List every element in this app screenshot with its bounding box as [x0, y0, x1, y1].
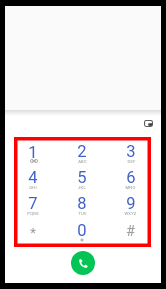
staticText: 3 [126, 142, 136, 161]
staticText: 7 [28, 194, 38, 213]
staticText: 2 [77, 142, 87, 161]
staticText: WXYZ [124, 211, 137, 216]
staticText: 1 [28, 143, 38, 162]
button[interactable]: 4 [9, 167, 57, 193]
button[interactable]: 8 [57, 193, 106, 219]
staticText: 8 [77, 194, 87, 213]
staticText: # [126, 223, 135, 240]
staticText: * [30, 225, 36, 240]
staticText: JKL [78, 185, 86, 190]
button[interactable]: 0 [57, 219, 106, 245]
button[interactable]: 2 [57, 141, 106, 167]
button[interactable]: Call [71, 251, 95, 275]
staticText: 5 [77, 168, 87, 187]
button[interactable]: 1 [9, 141, 57, 167]
staticText: DEF [127, 159, 136, 164]
staticText: 9 [126, 194, 136, 213]
button[interactable]: # [106, 219, 155, 245]
button[interactable]: 3 [106, 141, 155, 167]
button[interactable]: 6 [106, 167, 155, 193]
staticText: 0 [77, 221, 87, 240]
staticText: ABC [78, 159, 87, 164]
button[interactable]: 9 [106, 193, 155, 219]
staticText: PQRS [27, 211, 39, 216]
button[interactable]: * [9, 219, 57, 245]
button[interactable]: Picture in picture [136, 111, 160, 135]
button[interactable]: 7 [9, 193, 57, 219]
staticText: 6 [126, 168, 136, 187]
staticText: MNO [125, 185, 136, 190]
staticText: 4 [28, 168, 38, 187]
staticText: GHI [29, 185, 37, 190]
button[interactable]: 5 [57, 167, 106, 193]
staticText: TUV [78, 211, 87, 216]
